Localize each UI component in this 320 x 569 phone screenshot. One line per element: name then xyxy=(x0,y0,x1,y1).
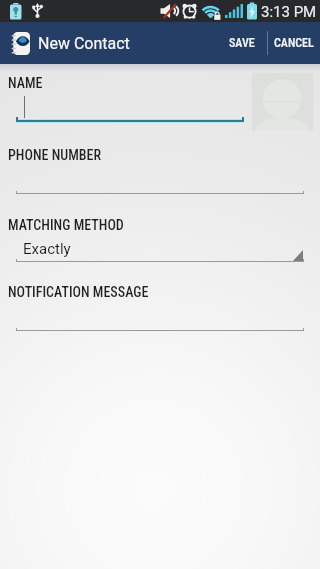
staticText: NAME xyxy=(8,75,43,91)
button[interactable]: CANCEL xyxy=(268,22,320,64)
staticText: New Contact xyxy=(38,34,130,53)
staticText: PHONE NUMBER xyxy=(8,147,102,163)
staticText: CANCEL xyxy=(274,36,314,50)
button[interactable]: Exactly xyxy=(0,240,320,262)
staticText: Exactly xyxy=(23,240,71,258)
staticText: 3:13 PM xyxy=(261,3,317,21)
other: App icon xyxy=(11,32,30,55)
button[interactable]: SAVE xyxy=(216,22,267,64)
staticText: MATCHING METHOD xyxy=(8,217,124,233)
staticText: SAVE xyxy=(229,36,255,50)
button[interactable]: Contact photo xyxy=(251,72,313,131)
staticText: NOTIFICATION MESSAGE xyxy=(8,284,149,300)
